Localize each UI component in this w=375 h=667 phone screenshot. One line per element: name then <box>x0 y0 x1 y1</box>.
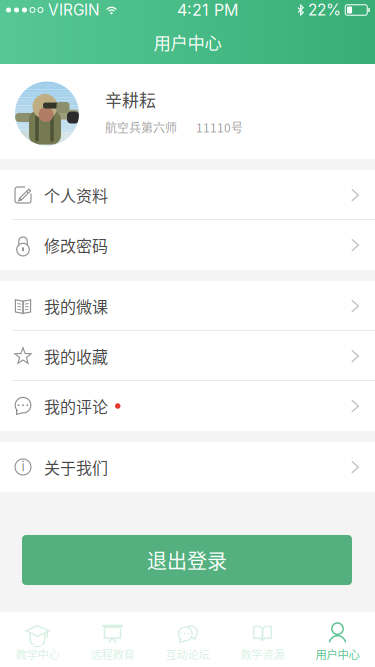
staticText: 数字资源 <box>240 646 284 662</box>
button[interactable]: 数字资源 <box>225 615 300 667</box>
button[interactable]: 远程教育 <box>75 615 150 667</box>
button[interactable]: 修改密码 <box>0 220 375 270</box>
staticText: 22% <box>308 1 341 19</box>
button[interactable]: 辛耕耘 <box>0 64 375 159</box>
staticText: 我的收藏 <box>44 344 108 368</box>
staticText: i <box>21 458 24 474</box>
staticText: 11110号 <box>196 119 243 136</box>
staticText: 用户中心 <box>315 646 359 662</box>
staticText: 用户中心 <box>153 29 221 55</box>
staticText: 个人资料 <box>44 183 108 207</box>
button[interactable]: 退出登录 <box>22 535 352 585</box>
staticText: 4:21 PM <box>177 0 238 20</box>
staticText: 我的评论 <box>44 394 108 418</box>
button[interactable]: 我的微课 <box>0 281 375 331</box>
staticText: 辛耕耘 <box>105 87 156 112</box>
staticText: 我的微课 <box>44 294 108 318</box>
button[interactable]: 我的收藏 <box>0 331 375 381</box>
button[interactable]: 用户中心 <box>300 615 375 667</box>
staticText: 关于我们 <box>44 455 108 479</box>
staticText: 航空兵第六师 <box>105 119 177 136</box>
staticText: 退出登录 <box>147 545 227 574</box>
button[interactable]: 教学中心 <box>0 615 75 667</box>
staticText: 修改密码 <box>44 233 108 257</box>
button[interactable]: i <box>0 442 375 492</box>
staticText: VIRGIN <box>48 1 100 19</box>
button[interactable]: 互动论坛 <box>150 615 225 667</box>
staticText: 教学中心 <box>15 646 59 662</box>
button[interactable]: 个人资料 <box>0 170 375 220</box>
staticText: 远程教育 <box>90 646 134 662</box>
button[interactable]: 我的评论 <box>0 381 375 431</box>
staticText: 互动论坛 <box>165 646 209 662</box>
